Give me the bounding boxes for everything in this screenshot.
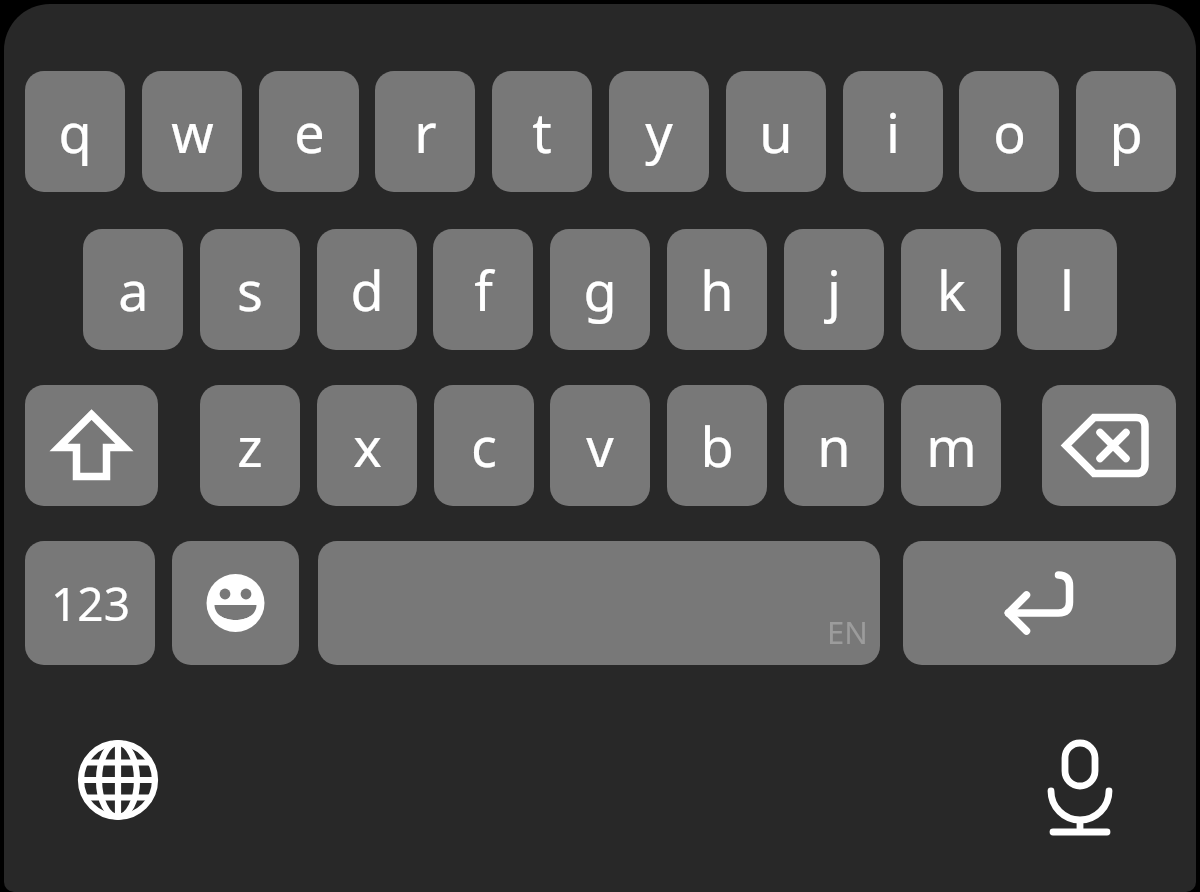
staticText: d: [350, 253, 384, 327]
button[interactable]: y: [609, 71, 709, 192]
staticText: p: [1109, 95, 1143, 169]
button[interactable]: 123: [25, 541, 155, 665]
button[interactable]: Backspace: [1042, 385, 1176, 506]
button[interactable]: j: [784, 229, 884, 350]
staticText: a: [118, 253, 149, 327]
button[interactable]: w: [142, 71, 242, 192]
staticText: e: [294, 95, 325, 169]
staticText: b: [700, 409, 734, 483]
staticText: o: [993, 95, 1026, 169]
staticText: z: [237, 409, 263, 483]
button[interactable]: Emoji keyboard: [172, 541, 299, 665]
button[interactable]: Voice input: [1030, 730, 1130, 830]
button[interactable]: z: [200, 385, 300, 506]
staticText: h: [700, 253, 734, 327]
button[interactable]: g: [550, 229, 650, 350]
button[interactable]: k: [901, 229, 1001, 350]
button[interactable]: f: [433, 229, 533, 350]
staticText: u: [759, 95, 793, 169]
staticText: r: [414, 95, 437, 169]
staticText: t: [532, 95, 552, 169]
button[interactable]: o: [959, 71, 1059, 192]
button[interactable]: u: [726, 71, 826, 192]
button[interactable]: m: [901, 385, 1001, 506]
button[interactable]: r: [375, 71, 475, 192]
button[interactable]: s: [200, 229, 300, 350]
button[interactable]: n: [784, 385, 884, 506]
staticText: g: [583, 253, 617, 327]
staticText: n: [817, 409, 851, 483]
staticText: l: [1060, 253, 1074, 327]
staticText: 123: [51, 572, 130, 635]
staticText: k: [937, 253, 966, 327]
button[interactable]: v: [550, 385, 650, 506]
button[interactable]: t: [492, 71, 592, 192]
button[interactable]: Shift: [25, 385, 158, 506]
button[interactable]: p: [1076, 71, 1176, 192]
button[interactable]: Enter: [903, 541, 1176, 665]
staticText: EN: [827, 611, 868, 653]
button[interactable]: x: [317, 385, 417, 506]
staticText: x: [353, 409, 382, 483]
button[interactable]: Space: [318, 541, 880, 665]
staticText: y: [645, 95, 673, 169]
button[interactable]: c: [434, 385, 534, 506]
button[interactable]: e: [259, 71, 359, 192]
button[interactable]: h: [667, 229, 767, 350]
staticText: f: [474, 253, 493, 327]
staticText: v: [586, 409, 614, 483]
staticText: q: [58, 95, 92, 169]
button[interactable]: b: [667, 385, 767, 506]
button[interactable]: a: [83, 229, 183, 350]
button[interactable]: d: [317, 229, 417, 350]
staticText: j: [827, 253, 841, 327]
staticText: c: [471, 409, 497, 483]
button[interactable]: l: [1017, 229, 1117, 350]
button[interactable]: q: [25, 71, 125, 192]
staticText: w: [171, 95, 214, 169]
staticText: m: [926, 409, 977, 483]
button[interactable]: Change language: [68, 730, 168, 830]
staticText: i: [886, 95, 900, 169]
staticText: s: [237, 253, 263, 327]
button[interactable]: i: [843, 71, 943, 192]
